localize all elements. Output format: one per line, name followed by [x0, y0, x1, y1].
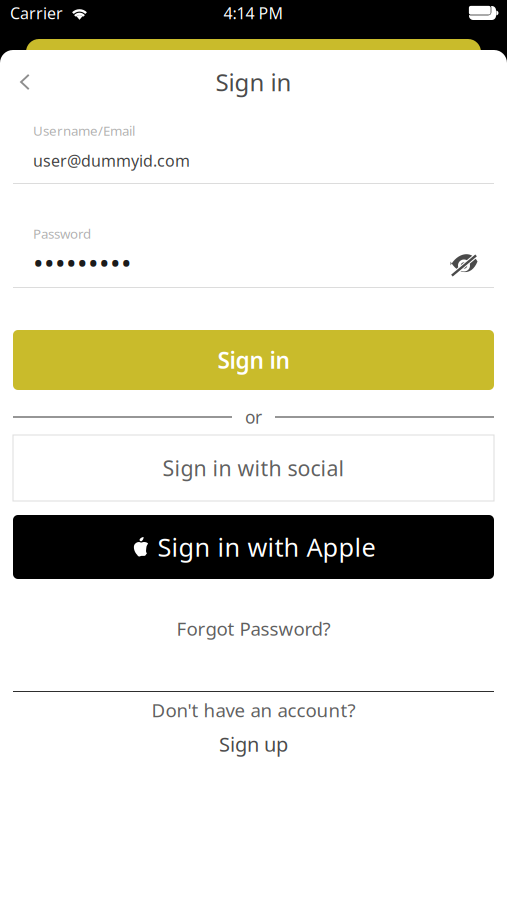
button[interactable]: Show password	[447, 246, 481, 280]
button[interactable]: Back	[0, 59, 50, 105]
button[interactable]: Sign in	[13, 330, 494, 390]
button[interactable]: Forgot Password?	[176, 619, 330, 638]
staticText: Don't have an account?	[151, 698, 355, 722]
staticText: Carrier	[10, 2, 63, 24]
staticText: Sign in	[217, 345, 289, 375]
staticText: Sign in with Apple	[157, 530, 375, 564]
staticText: Password	[33, 225, 91, 242]
staticText: Sign in	[215, 66, 291, 98]
staticText: Username/Email	[33, 122, 135, 139]
button[interactable]: Sign in with Apple	[13, 515, 494, 579]
staticText: •••••••••	[33, 244, 132, 282]
button[interactable]: Sign up	[219, 734, 288, 754]
staticText: 4:14 PM	[223, 2, 283, 24]
staticText: user@dummyid.com	[33, 150, 190, 171]
staticText: Sign in with social	[162, 454, 344, 482]
button[interactable]: Sign in with social	[13, 435, 494, 501]
staticText: or	[245, 405, 262, 428]
staticText: Sign up	[219, 731, 288, 757]
staticText: Forgot Password?	[176, 616, 330, 641]
